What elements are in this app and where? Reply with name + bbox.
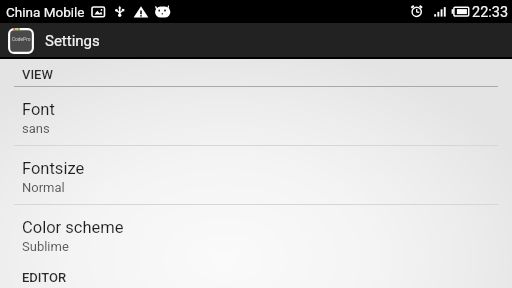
staticText: China Mobile (6, 4, 85, 20)
button[interactable]: Settings (39, 23, 110, 59)
button[interactable]: CodePro, navigate up (0, 23, 39, 59)
staticText: Color scheme (22, 218, 124, 237)
button[interactable]: Font (0, 87, 512, 145)
staticText: 22:33 (472, 4, 509, 21)
button[interactable]: Fontsize (0, 146, 512, 204)
staticText: EDITOR (22, 270, 67, 285)
button[interactable]: Color scheme (0, 205, 512, 263)
staticText: Settings (45, 32, 100, 50)
staticText: Font (22, 100, 55, 119)
staticText: Fontsize (22, 159, 85, 178)
staticText: Sublime (22, 239, 69, 254)
staticText: VIEW (22, 67, 53, 82)
staticText: Normal (22, 180, 65, 195)
staticText: CodePro (12, 37, 31, 43)
staticText: sans (22, 121, 50, 136)
